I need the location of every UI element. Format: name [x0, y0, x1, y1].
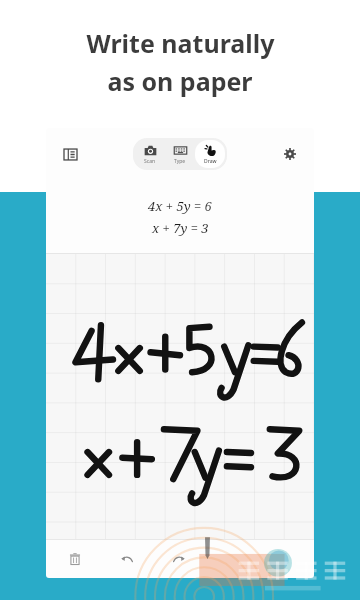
button[interactable]: History: [54, 138, 86, 170]
staticText: Draw: [204, 158, 217, 165]
button[interactable]: Draw: [195, 140, 225, 168]
button[interactable]: Scan: [135, 140, 165, 168]
staticText: 4x + 5y = 6: [148, 197, 212, 215]
button[interactable]: Delete: [62, 546, 88, 572]
staticText: Type: [174, 158, 186, 165]
button[interactable]: Type: [165, 140, 195, 168]
staticText: as on paper: [107, 64, 253, 98]
staticText: x + 7y = 3: [152, 219, 209, 237]
button[interactable]: Settings: [274, 138, 306, 170]
staticText: Write naturally: [86, 26, 275, 60]
button[interactable]: Undo: [114, 546, 140, 572]
button[interactable]: Redo: [166, 546, 192, 572]
staticText: Scan: [144, 158, 156, 165]
